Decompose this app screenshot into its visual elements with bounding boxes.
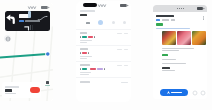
button[interactable]: Selected tab bbox=[98, 20, 103, 25]
button[interactable] bbox=[5, 11, 50, 31]
button[interactable] bbox=[76, 62, 131, 77]
button[interactable]: Photo bbox=[192, 31, 206, 45]
button[interactable]: Share bbox=[200, 90, 205, 95]
button[interactable]: Re-center map bbox=[4, 35, 11, 42]
button[interactable]: More options bbox=[202, 15, 205, 21]
button[interactable]: Directions bbox=[160, 89, 188, 96]
button[interactable]: Save bbox=[192, 90, 197, 95]
button[interactable]: Tab bbox=[112, 21, 115, 24]
button[interactable]: Photo bbox=[162, 31, 176, 45]
button[interactable]: All messages bbox=[85, 20, 90, 25]
button[interactable] bbox=[76, 30, 131, 45]
button[interactable]: Tab bbox=[123, 21, 126, 24]
button[interactable] bbox=[76, 46, 131, 61]
button[interactable] bbox=[76, 78, 131, 83]
button[interactable]: Start navigation bbox=[30, 87, 40, 93]
button[interactable]: Photo bbox=[177, 31, 191, 45]
button[interactable]: Start navigation bbox=[2, 82, 41, 98]
